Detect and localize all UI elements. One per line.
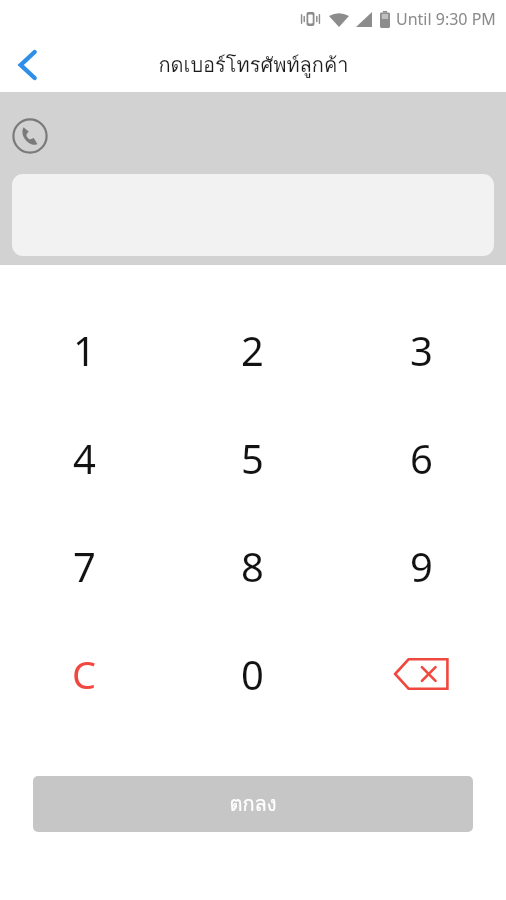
- staticText: 4: [73, 431, 96, 485]
- staticText: Until 9:30 PM: [396, 8, 496, 30]
- staticText: 9: [410, 539, 433, 593]
- button[interactable]: 3: [337, 296, 506, 404]
- button[interactable]: C: [0, 620, 168, 728]
- staticText: 7: [73, 539, 96, 593]
- staticText: 6: [410, 431, 433, 485]
- button[interactable]: 7: [0, 512, 168, 620]
- button[interactable]: 2: [168, 296, 337, 404]
- staticText: 5: [241, 431, 264, 485]
- button[interactable]: Back: [0, 38, 54, 92]
- button[interactable]: 9: [337, 512, 506, 620]
- button[interactable]: 4: [0, 404, 168, 512]
- button[interactable]: 1: [0, 296, 168, 404]
- button[interactable]: 0: [168, 620, 337, 728]
- button[interactable]: 6: [337, 404, 506, 512]
- staticText: 2: [241, 323, 264, 377]
- staticText: 0: [241, 647, 264, 701]
- button[interactable]: ตกลง: [33, 776, 473, 832]
- staticText: 3: [410, 323, 433, 377]
- staticText: กดเบอร์โทรศัพท์ลูกค้า: [158, 49, 349, 81]
- staticText: C: [72, 648, 97, 700]
- button[interactable]: 8: [168, 512, 337, 620]
- button[interactable]: 5: [168, 404, 337, 512]
- button[interactable]: Backspace: [337, 620, 506, 728]
- staticText: 1: [73, 323, 96, 377]
- staticText: 8: [241, 539, 264, 593]
- staticText: ตกลง: [229, 788, 277, 820]
- button[interactable]: Call: [12, 118, 48, 154]
